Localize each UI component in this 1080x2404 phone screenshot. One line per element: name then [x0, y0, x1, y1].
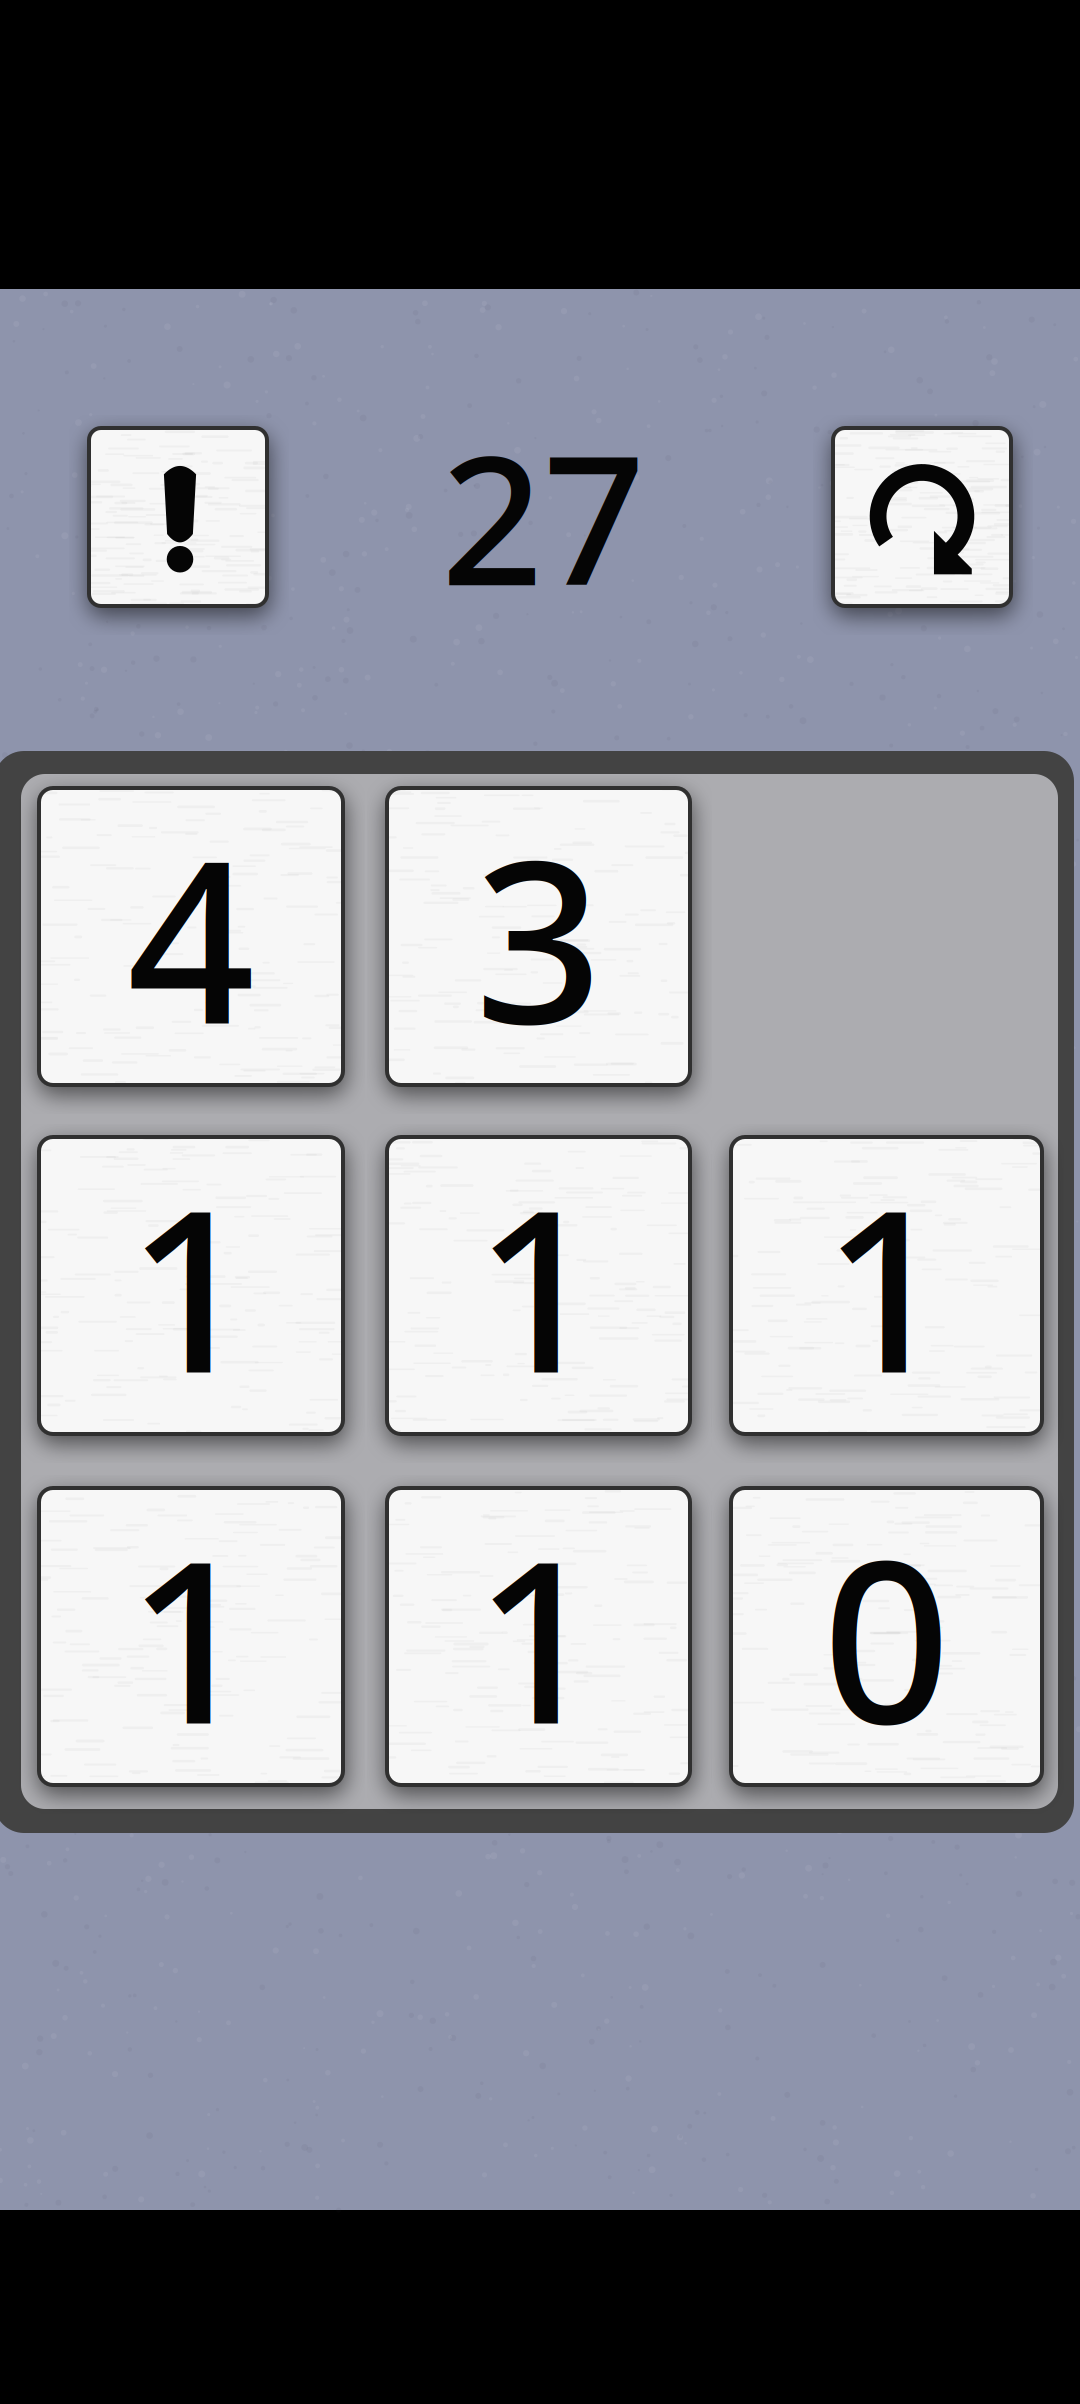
- staticText: 3: [474, 788, 602, 1085]
- button[interactable]: Restart game: [832, 427, 1012, 607]
- button[interactable]: How to play: [88, 427, 268, 607]
- button[interactable]: 0: [730, 1487, 1043, 1786]
- staticText: 1: [474, 1488, 602, 1785]
- button[interactable]: 3: [386, 787, 691, 1086]
- staticText: 1: [127, 1137, 255, 1434]
- staticText: 1: [822, 1137, 950, 1434]
- button[interactable]: 1: [38, 1136, 344, 1435]
- button[interactable]: 1: [38, 1487, 344, 1786]
- staticText: 1: [474, 1137, 602, 1434]
- staticText: 0: [822, 1488, 950, 1785]
- button[interactable]: 1: [386, 1136, 691, 1435]
- button[interactable]: 1: [730, 1136, 1043, 1435]
- button[interactable]: 4: [38, 787, 344, 1086]
- button[interactable]: 1: [386, 1487, 691, 1786]
- staticText: 4: [127, 788, 255, 1085]
- staticText: 1: [127, 1488, 255, 1785]
- staticText: 27: [441, 397, 645, 635]
